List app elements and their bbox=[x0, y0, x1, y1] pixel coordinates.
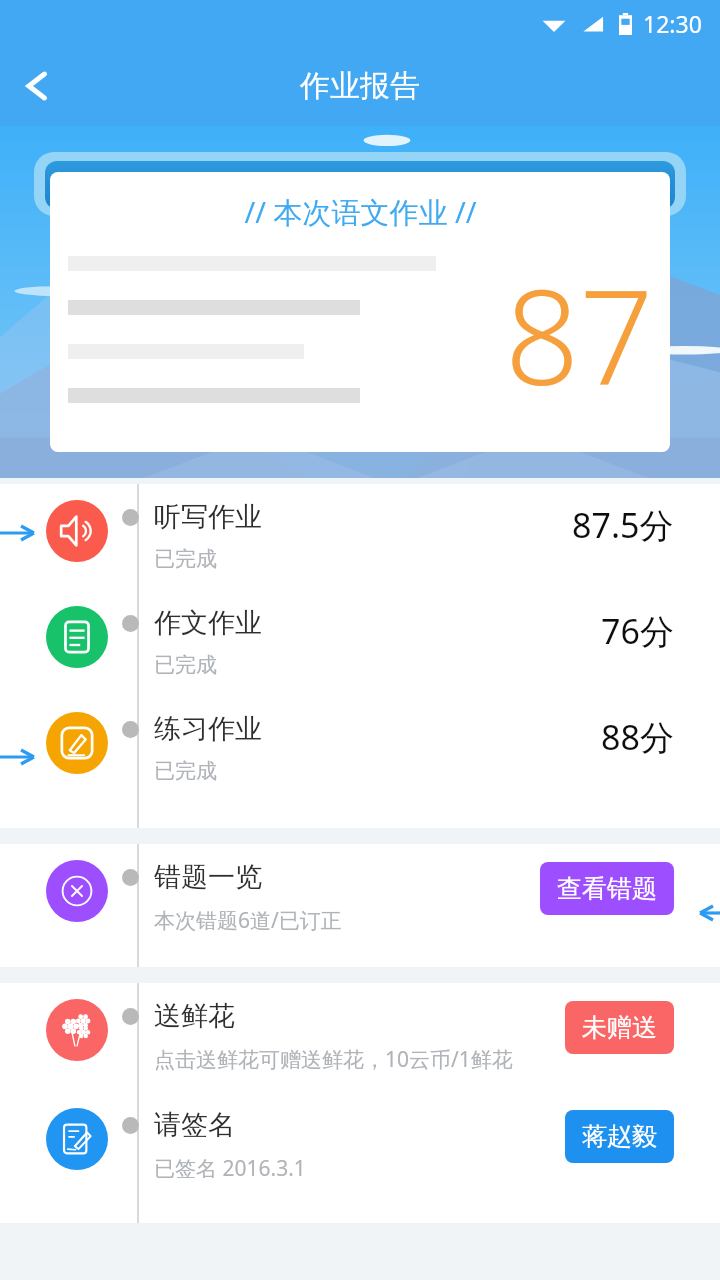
staticText: 已完成 bbox=[154, 652, 217, 678]
staticText: 查看错题 bbox=[557, 873, 657, 904]
staticText: 已签名 2016.3.1 bbox=[154, 1154, 306, 1183]
staticText: 87 bbox=[505, 246, 654, 423]
staticText: 送鲜花 bbox=[154, 999, 235, 1033]
staticText: 已完成 bbox=[154, 758, 217, 784]
button[interactable]: 听写作业 bbox=[0, 484, 720, 590]
button[interactable]: 作文作业 bbox=[0, 590, 720, 696]
staticText: 87.5分 bbox=[572, 502, 674, 548]
button[interactable]: 送鲜花 bbox=[0, 983, 720, 1092]
staticText: 作文作业 bbox=[154, 606, 262, 640]
button[interactable]: 练习作业 bbox=[0, 696, 720, 828]
staticText: 作业报告 bbox=[300, 67, 420, 105]
button[interactable]: 蒋赵毅 bbox=[565, 1110, 674, 1163]
staticText: 点击送鲜花可赠送鲜花，10云币/1鲜花 bbox=[154, 1045, 513, 1074]
staticText: 88分 bbox=[601, 714, 674, 760]
staticText: 已完成 bbox=[154, 546, 217, 572]
staticText: 请签名 bbox=[154, 1108, 235, 1142]
button[interactable]: 请签名 bbox=[0, 1092, 720, 1223]
staticText: 蒋赵毅 bbox=[582, 1121, 657, 1152]
staticText: 12:30 bbox=[643, 8, 702, 39]
staticText: 未赠送 bbox=[582, 1012, 657, 1043]
button[interactable]: Back bbox=[8, 56, 68, 116]
staticText: 76分 bbox=[601, 608, 674, 654]
staticText: // 本次语文作业 // bbox=[244, 192, 477, 232]
staticText: 本次错题6道/已订正 bbox=[154, 906, 342, 935]
staticText: 听写作业 bbox=[154, 500, 262, 534]
button[interactable]: 未赠送 bbox=[565, 1001, 674, 1054]
staticText: 练习作业 bbox=[154, 712, 262, 746]
button[interactable]: 错题一览 bbox=[0, 844, 720, 967]
button[interactable]: 查看错题 bbox=[540, 862, 674, 915]
staticText: 错题一览 bbox=[154, 860, 262, 894]
